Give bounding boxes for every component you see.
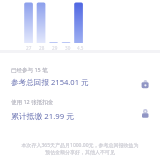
- other: Coupon details: [141, 109, 150, 118]
- staticText: 30: [65, 45, 71, 51]
- other: Reward details: [141, 80, 150, 89]
- staticText: 使用 12 张抵扣金: [11, 98, 54, 106]
- staticText: 4.5: [77, 45, 84, 51]
- button[interactable]: 使用 12 张抵扣金: [0, 95, 160, 123]
- button[interactable]: 已经参与 15 笔: [0, 62, 160, 90]
- staticText: 已经参与 15 笔: [11, 66, 48, 74]
- staticText: 累计抵缴 21.99 元: [11, 111, 74, 122]
- staticText: 参考总回报 2154.01 元: [11, 77, 89, 87]
- staticText: 28: [39, 45, 45, 51]
- staticText: 27: [26, 45, 32, 51]
- staticText: 本次存入365天产品月1000.00元，参考总回报收益为 预估金额分享好，其他人…: [8, 142, 152, 156]
- staticText: 29: [52, 45, 58, 51]
